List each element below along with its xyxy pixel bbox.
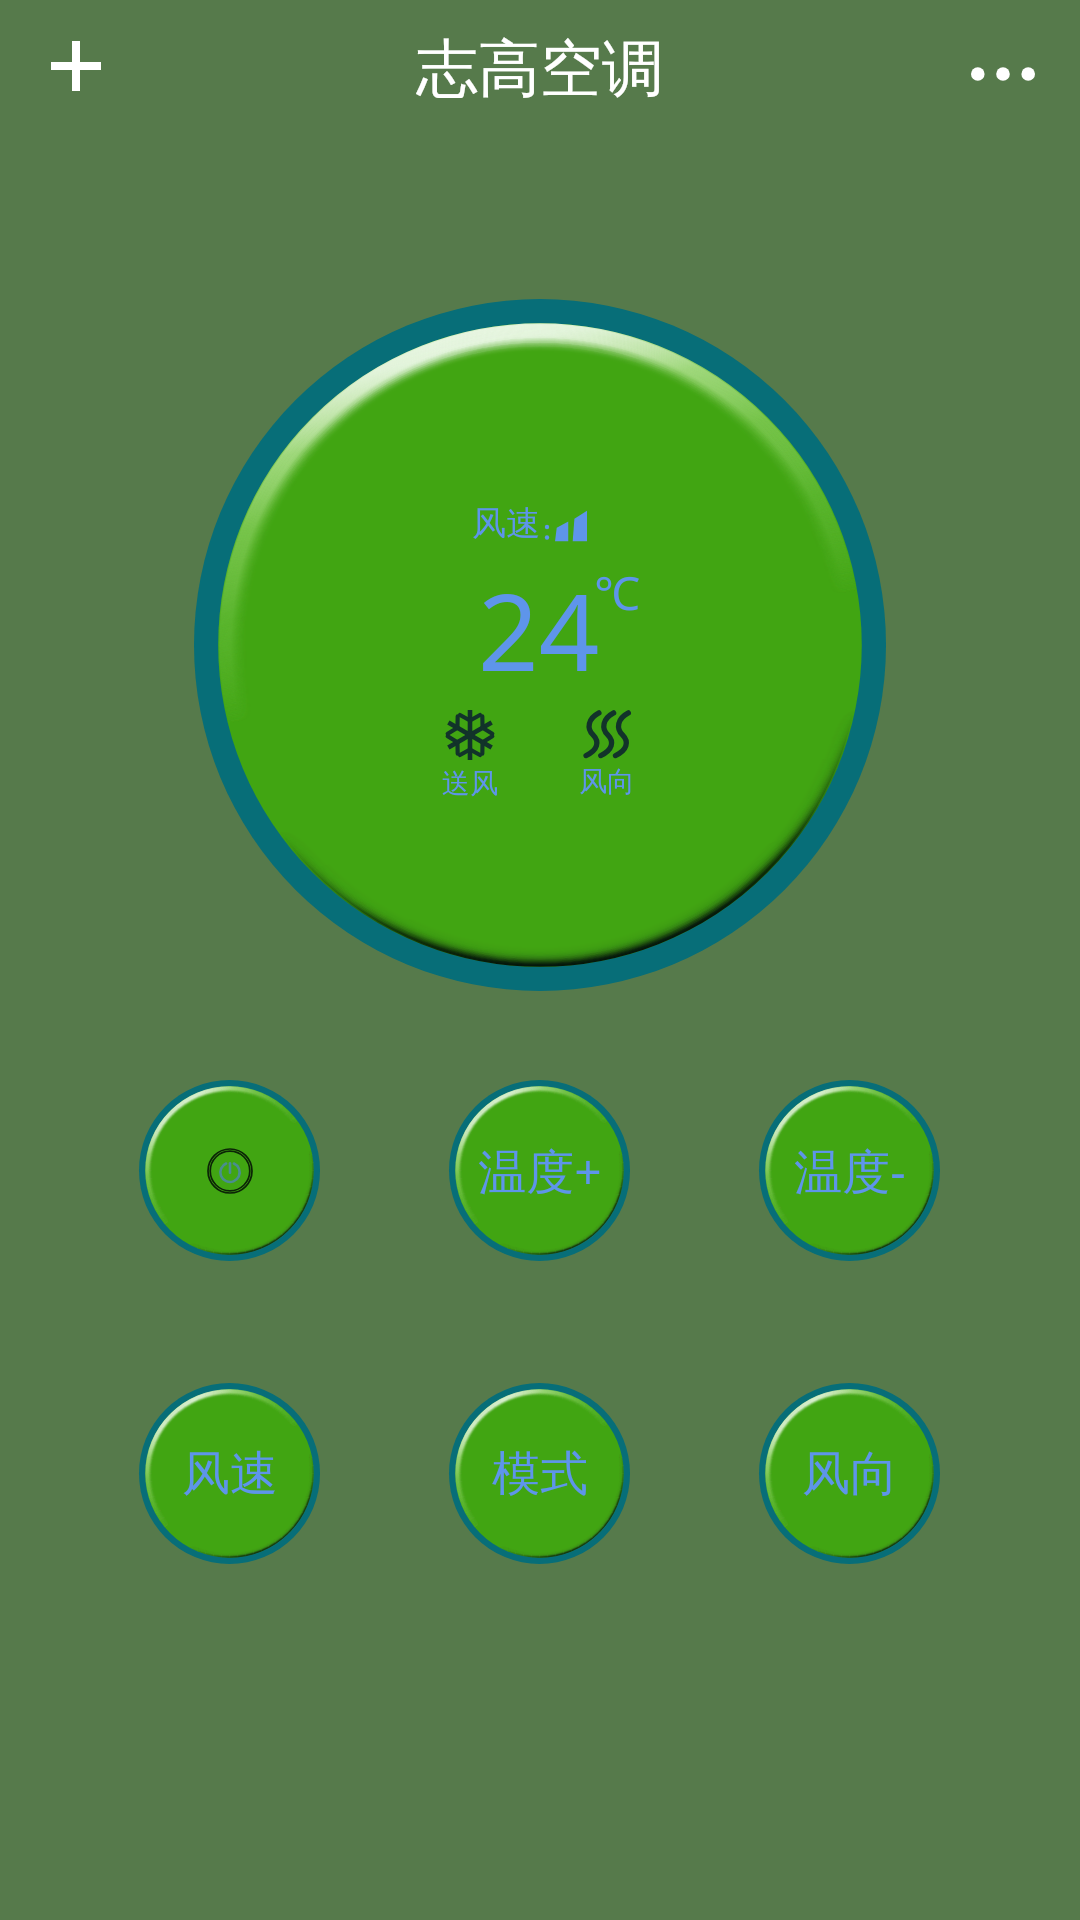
button[interactable]: More options xyxy=(943,14,1063,134)
staticText: 模式 xyxy=(492,1444,588,1504)
staticText: 送风 xyxy=(442,766,498,801)
staticText: 24 xyxy=(478,558,600,702)
staticText: ℃ xyxy=(594,561,640,624)
button[interactable]: 温度+ xyxy=(449,1080,630,1261)
staticText: 风速 xyxy=(472,502,540,545)
button[interactable]: Add xyxy=(16,6,136,126)
button[interactable]: 温度- xyxy=(759,1080,940,1261)
staticText: 温度+ xyxy=(478,1138,602,1204)
staticText: 风速 xyxy=(182,1444,278,1504)
button[interactable]: 模式 xyxy=(449,1383,630,1564)
button[interactable]: 风速 xyxy=(194,299,886,991)
staticText: 风向 xyxy=(802,1444,898,1504)
staticText: 风向 xyxy=(579,764,635,799)
other: Power xyxy=(207,1148,253,1194)
staticText: 志高空调 xyxy=(416,30,664,108)
button[interactable]: 风向 xyxy=(759,1383,940,1564)
button[interactable]: Power xyxy=(139,1080,320,1261)
button[interactable]: 风速 xyxy=(139,1383,320,1564)
staticText: 温度- xyxy=(794,1138,906,1204)
